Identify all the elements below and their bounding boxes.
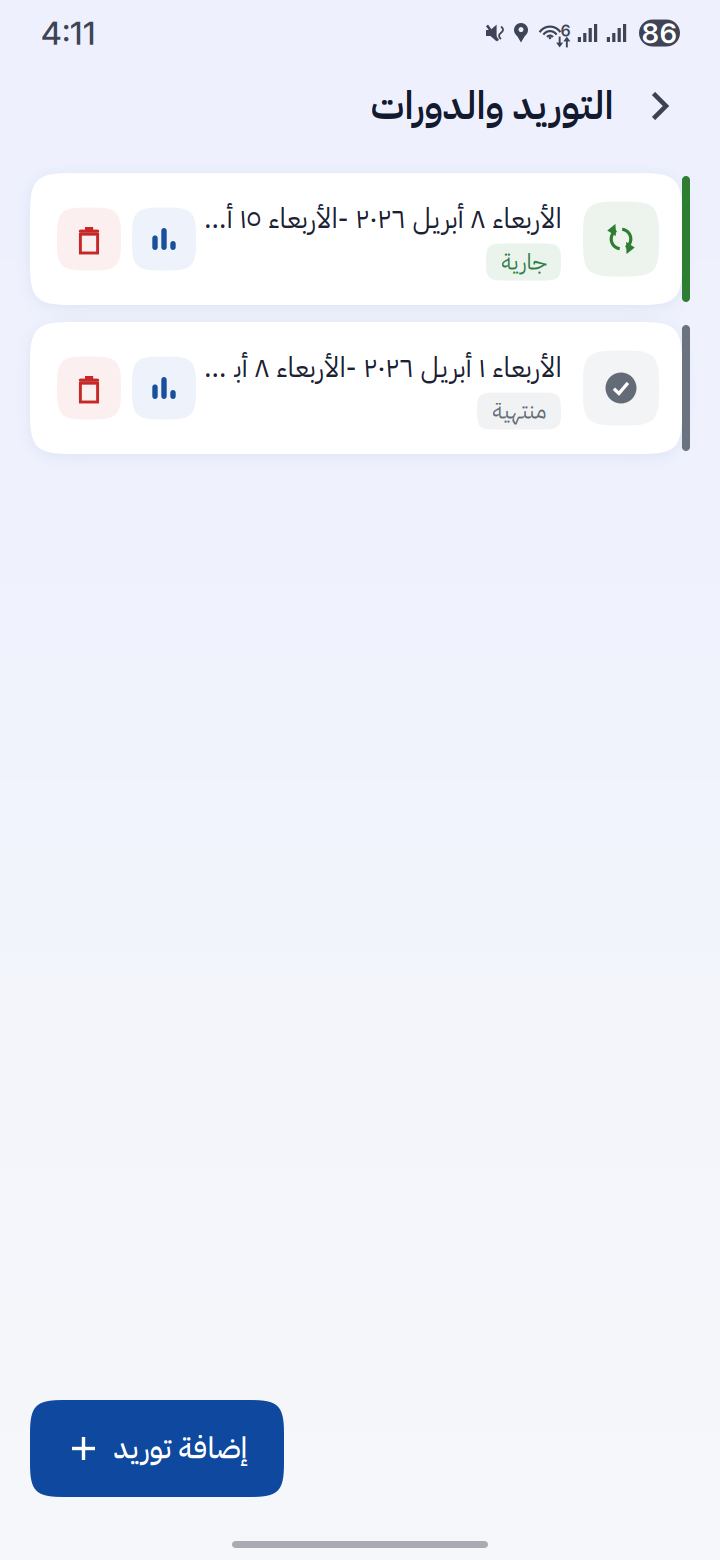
staticText: الأربعاء ٨ أبريل ٢٠٢٦ -الأربعاء ١٥ أبر..… — [204, 197, 561, 239]
staticText: 4:11 — [41, 14, 96, 52]
staticText: إضافة توريد — [113, 1426, 247, 1470]
button[interactable]: إضافة توريد — [30, 1400, 284, 1497]
button[interactable]: حذف — [57, 356, 121, 419]
staticText: 86 — [641, 16, 677, 50]
staticText: جارية — [501, 245, 546, 279]
button[interactable]: حذف — [57, 207, 121, 270]
staticText: منتهية — [492, 394, 546, 428]
staticText: 6 — [560, 21, 570, 40]
staticText: التوريد والدورات — [370, 77, 613, 135]
button[interactable]: إحصائيات — [132, 356, 196, 419]
button[interactable]: إحصائيات — [132, 207, 196, 270]
staticText: الأربعاء ١ أبريل ٢٠٢٦ -الأربعاء ٨ أبري..… — [204, 346, 561, 388]
button[interactable]: رجوع — [643, 84, 677, 128]
